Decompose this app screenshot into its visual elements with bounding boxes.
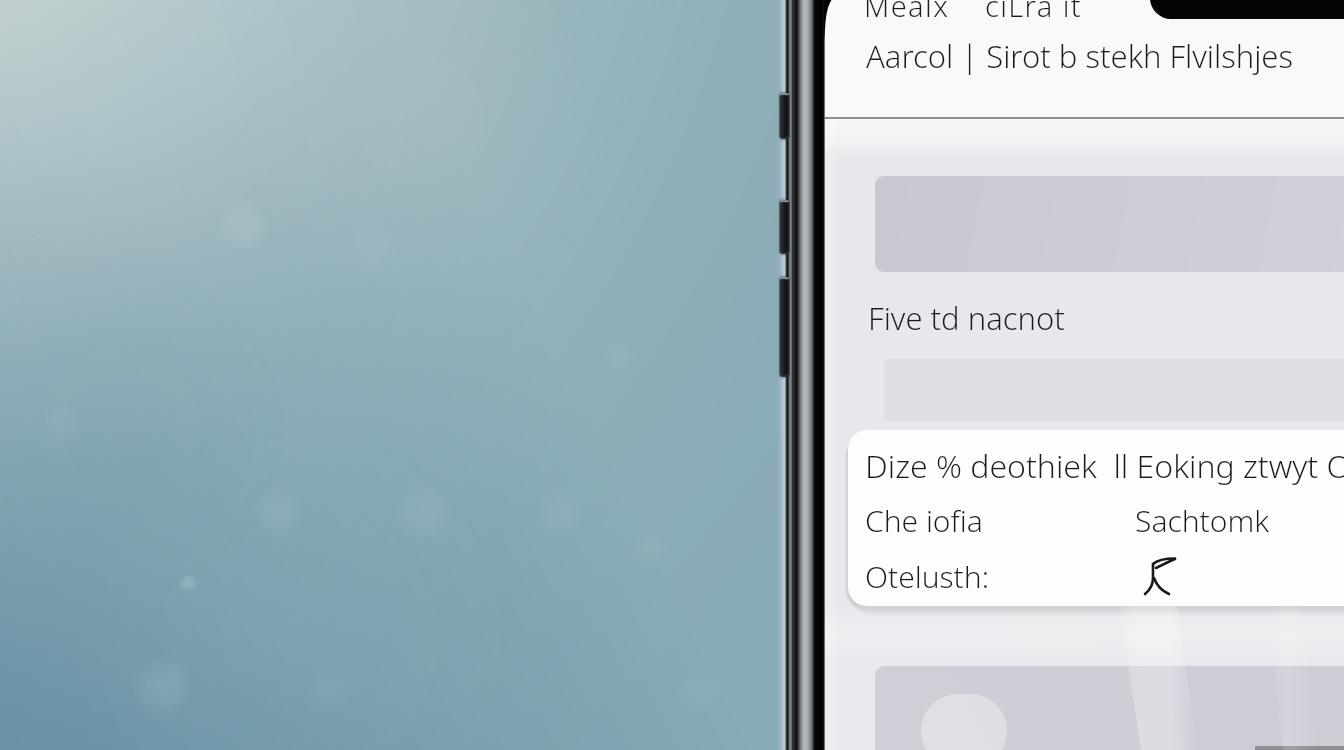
button[interactable]: Dize % deothiek ll Eoking ztwyt O xyxy=(848,430,1344,606)
button[interactable] xyxy=(875,666,1344,750)
button[interactable]: Aarcol | Sirot b stekh Flvilshjes xyxy=(866,35,1293,77)
staticText: Mealx ciLra it xyxy=(864,0,1083,25)
staticText: Five td nacnot xyxy=(868,297,1065,339)
staticText: Dize % deothiek ll Eoking ztwyt O xyxy=(865,444,1344,488)
staticText: Sachtomk xyxy=(1135,500,1270,541)
staticText: Aarcol | Sirot b stekh Flvilshjes xyxy=(866,35,1293,77)
other: Signature mark xyxy=(1144,558,1188,602)
staticText: Otelusth: xyxy=(865,556,989,597)
staticText: Che iofia xyxy=(865,500,983,541)
